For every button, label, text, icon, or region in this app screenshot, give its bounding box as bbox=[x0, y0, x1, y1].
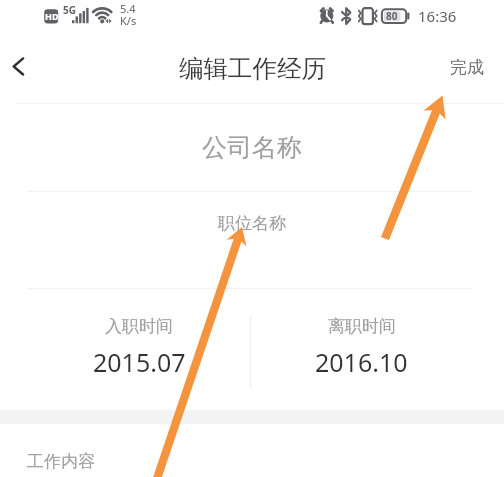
staticText: 2015.07 bbox=[93, 345, 186, 379]
staticText: K/s bbox=[120, 13, 137, 28]
staticText: 编辑工作经历 bbox=[179, 53, 326, 84]
button[interactable]: Back bbox=[0, 48, 42, 92]
button[interactable]: 入职时间 bbox=[28, 289, 250, 379]
staticText: 公司名称 bbox=[202, 132, 302, 163]
staticText: 5G bbox=[63, 3, 76, 17]
staticText: 完成 bbox=[450, 57, 484, 78]
staticText: 2016.10 bbox=[315, 345, 408, 379]
staticText: 职位名称 bbox=[218, 213, 286, 234]
button[interactable]: 公司名称 bbox=[0, 104, 504, 191]
button[interactable]: 职位名称 bbox=[0, 192, 504, 288]
staticText: 5.4 bbox=[120, 1, 136, 16]
button[interactable]: 离职时间 bbox=[250, 289, 473, 379]
staticText: 离职时间 bbox=[328, 316, 396, 337]
staticText: HD bbox=[45, 10, 59, 22]
staticText: 16:36 bbox=[418, 6, 457, 26]
staticText: 工作内容 bbox=[27, 451, 95, 472]
staticText: 80 bbox=[386, 9, 398, 23]
button[interactable]: 完成 bbox=[450, 44, 484, 90]
staticText: 入职时间 bbox=[105, 316, 173, 337]
